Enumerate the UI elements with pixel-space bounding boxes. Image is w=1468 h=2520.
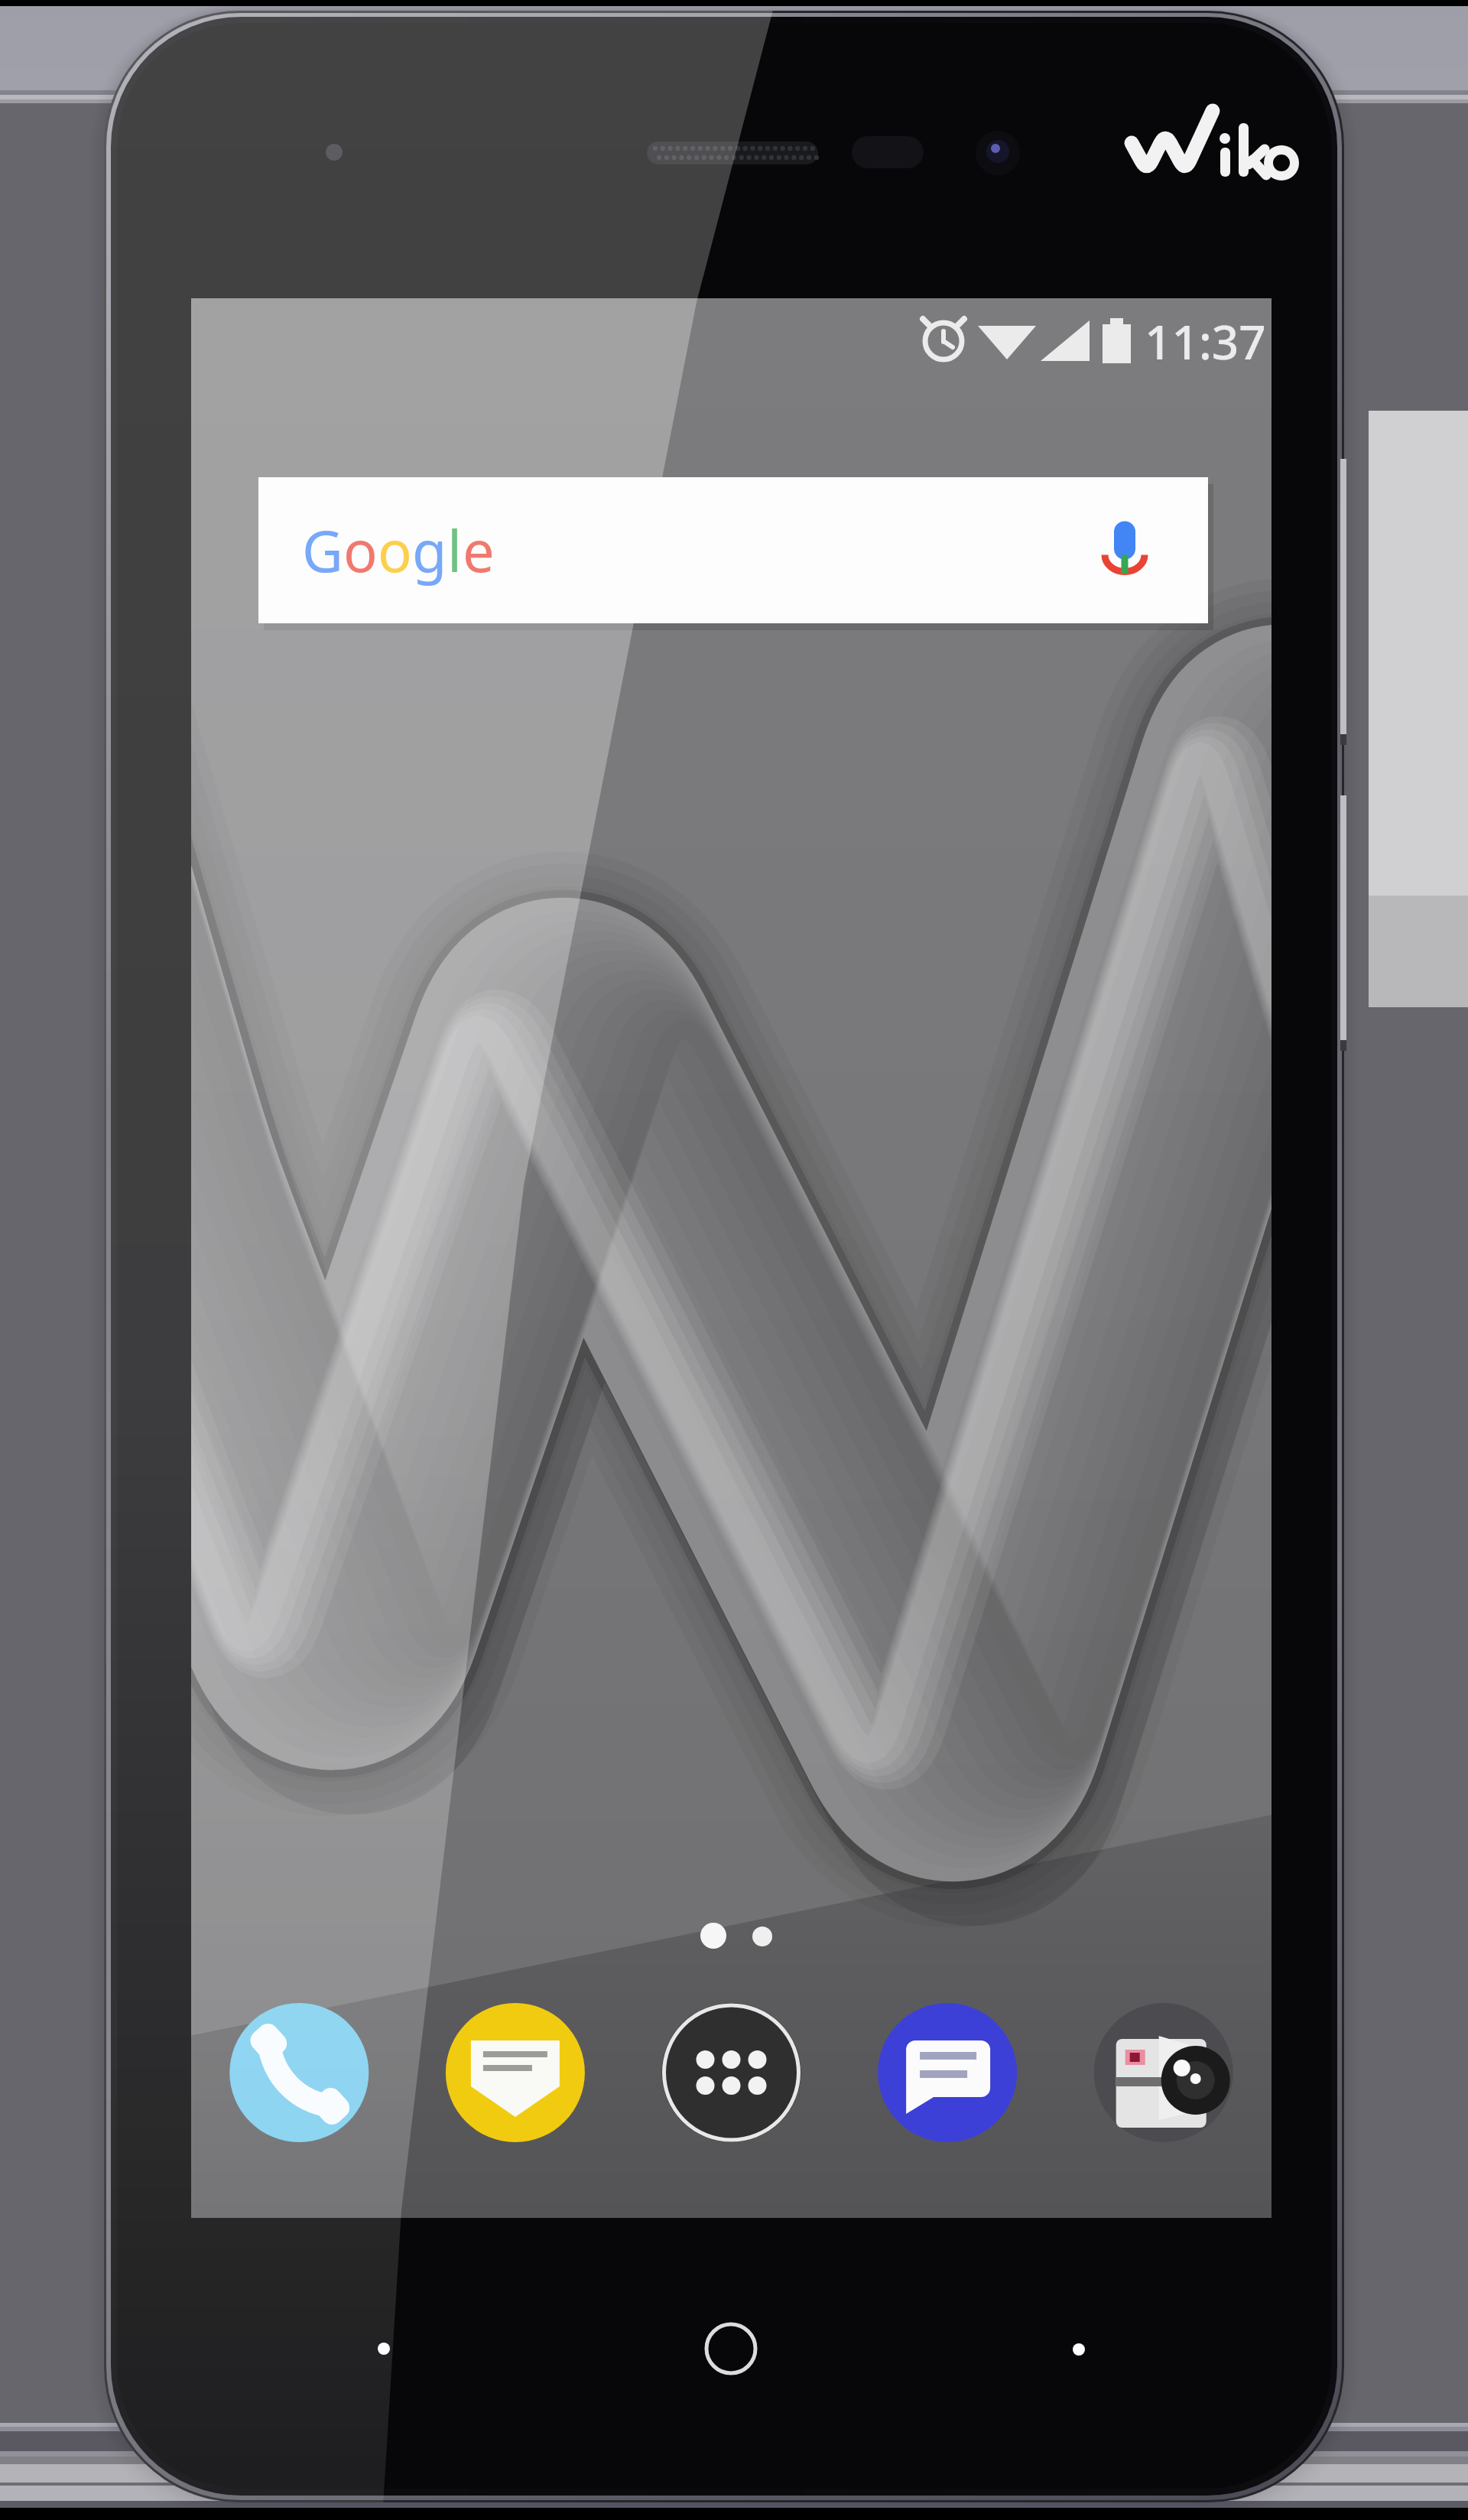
- button[interactable]: Wiko smartphone home screen: [0, 0, 1468, 2520]
